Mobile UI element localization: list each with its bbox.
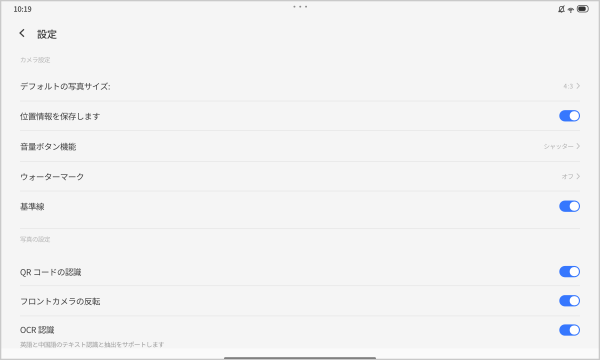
staticText: 基準線: [20, 200, 44, 212]
staticText: オフ: [562, 172, 574, 181]
button[interactable]: 基準線: [0, 191, 600, 228]
staticText: 位置情報を保存します: [20, 110, 100, 122]
button[interactable]: 位置情報を保存します: [0, 101, 600, 130]
staticText: カメラ設定: [20, 55, 50, 64]
button[interactable]: QR コードの認識: [0, 258, 600, 285]
staticText: OCR 認識: [20, 323, 54, 335]
button[interactable]: Back: [11, 22, 33, 44]
staticText: デフォルトの写真サイズ:: [20, 80, 110, 92]
staticText: 4:3: [564, 81, 574, 90]
button[interactable]: ウォーターマーク: [0, 162, 600, 191]
staticText: 設定: [37, 26, 57, 41]
staticText: ウォーターマーク: [20, 170, 84, 182]
staticText: QR コードの認識: [20, 266, 81, 278]
button[interactable]: OCR 認識: [0, 316, 600, 348]
staticText: 10:19: [14, 3, 32, 14]
staticText: 英語と中国語のテキスト認識と抽出をサポートします: [20, 340, 164, 349]
button[interactable]: 音量ボタン機能: [0, 131, 600, 161]
staticText: シャッター: [544, 141, 574, 151]
button[interactable]: デフォルトの写真サイズ:: [0, 71, 600, 101]
staticText: 音量ボタン機能: [20, 140, 76, 152]
staticText: 写真の設定: [20, 234, 50, 244]
staticText: フロントカメラの反転: [20, 295, 100, 307]
button[interactable]: フロントカメラの反転: [0, 286, 600, 315]
